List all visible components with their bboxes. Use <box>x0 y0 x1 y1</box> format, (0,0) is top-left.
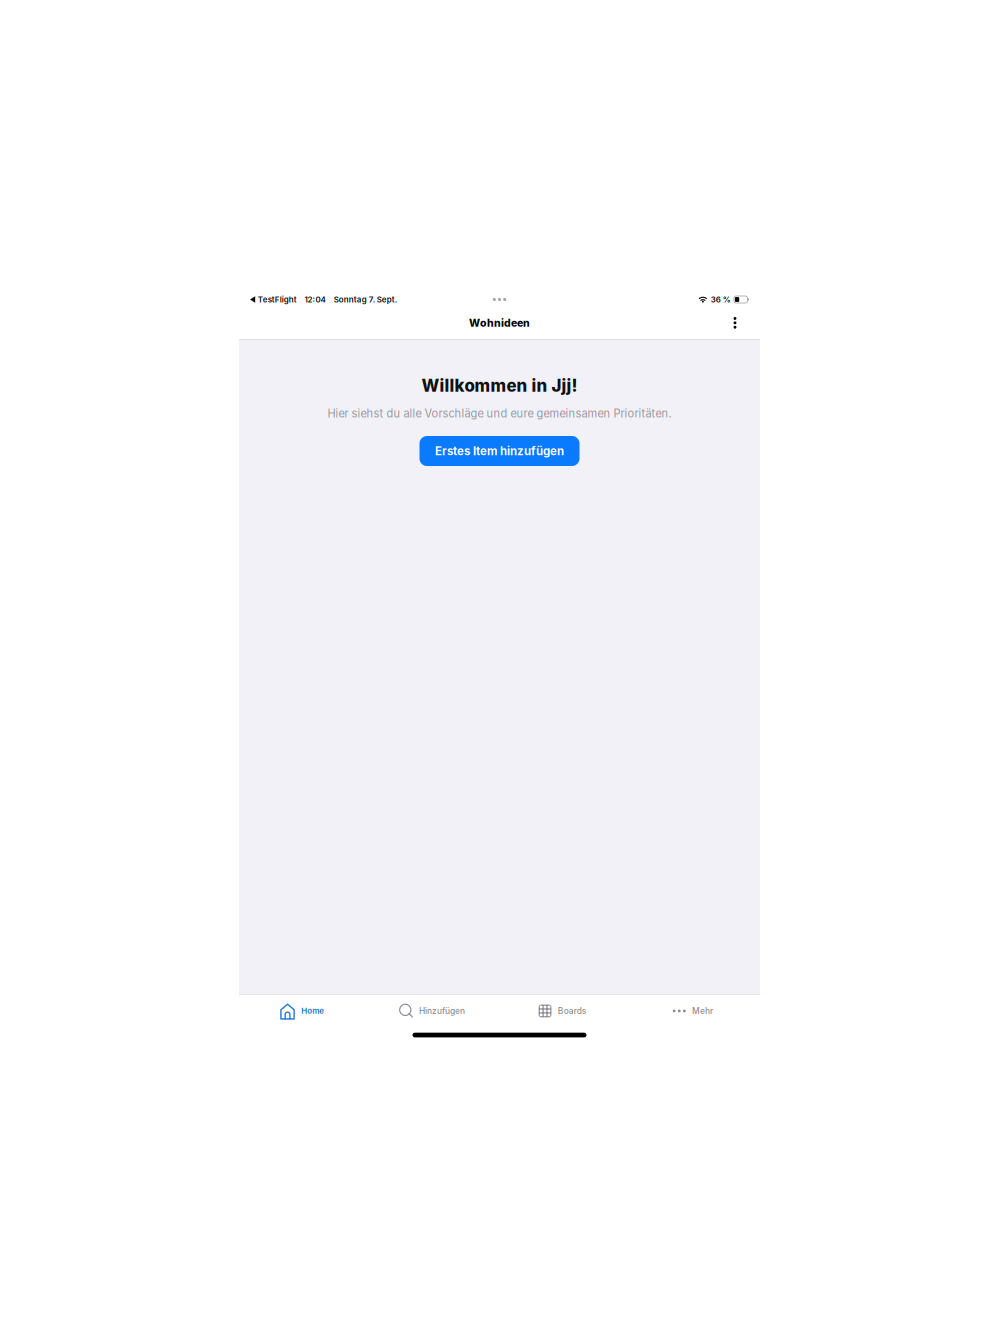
staticText: Mehr <box>692 1006 713 1016</box>
staticText: Erstes Item hinzufügen <box>435 444 564 458</box>
staticText: Boards <box>558 1006 587 1016</box>
button[interactable]: More options <box>722 310 748 336</box>
staticText: Home <box>301 1006 324 1016</box>
staticText: Hinzufügen <box>419 1006 465 1016</box>
button[interactable]: Erstes Item hinzufügen <box>419 436 579 466</box>
button[interactable]: Home <box>237 997 367 1025</box>
button[interactable]: Boards <box>497 998 628 1023</box>
staticText: Willkommen in Jjj! <box>421 375 577 396</box>
staticText: 36 % <box>711 295 731 304</box>
staticText: 12:04 <box>304 295 325 304</box>
button[interactable]: Hinzufügen <box>367 998 497 1024</box>
staticText: Sonntag 7. Sept. <box>334 295 398 304</box>
button[interactable]: Mehr <box>628 998 758 1024</box>
staticText: Hier siehst du alle Vorschläge und eure … <box>327 407 671 420</box>
staticText: Wohnideen <box>469 316 530 329</box>
staticText: TestFlight <box>258 295 297 304</box>
